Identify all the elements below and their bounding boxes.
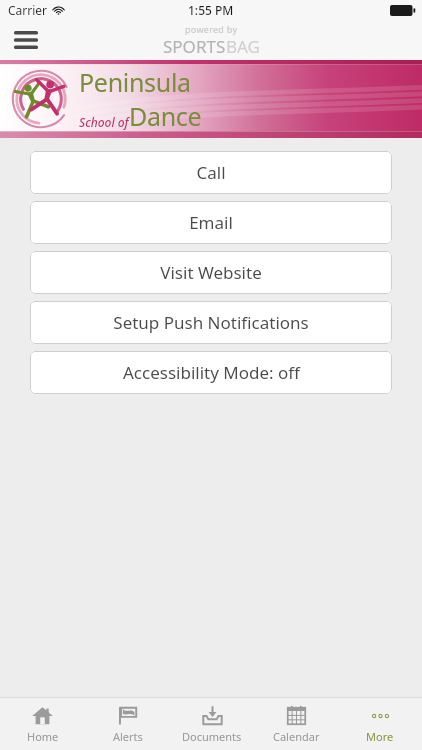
button[interactable]: Setup Push Notifications: [30, 301, 392, 344]
staticText: powered by: [185, 23, 238, 35]
staticText: Documents: [182, 729, 242, 744]
staticText: School of: [79, 114, 129, 130]
staticText: Call: [196, 161, 226, 184]
button[interactable]: Email: [30, 201, 392, 244]
button[interactable]: Alerts: [85, 698, 170, 750]
staticText: More: [366, 729, 394, 744]
button[interactable]: Calendar: [254, 698, 338, 750]
staticText: Carrier: [8, 2, 48, 18]
button[interactable]: Documents: [170, 698, 254, 750]
button[interactable]: More: [338, 698, 422, 750]
staticText: Accessibility Mode: off: [123, 361, 300, 384]
staticText: SPORTS: [163, 35, 226, 58]
staticText: 1:55 PM: [188, 2, 234, 18]
button[interactable]: Visit Website: [30, 251, 392, 294]
button[interactable]: Accessibility Mode: off: [30, 351, 392, 394]
button[interactable]: Home: [0, 698, 85, 750]
button[interactable]: Menu: [6, 20, 46, 60]
staticText: BAG: [226, 35, 260, 58]
staticText: Calendar: [273, 729, 320, 744]
staticText: Email: [189, 211, 233, 234]
staticText: Home: [27, 729, 59, 744]
staticText: Alerts: [113, 729, 143, 744]
staticText: Dance: [129, 99, 202, 133]
staticText: Setup Push Notifications: [113, 311, 309, 334]
staticText: Peninsula: [79, 65, 191, 99]
staticText: Visit Website: [160, 261, 262, 284]
button[interactable]: Call: [30, 151, 392, 194]
